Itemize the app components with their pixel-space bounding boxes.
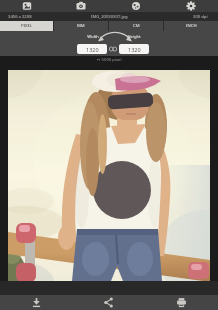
button[interactable]: CM (109, 21, 163, 31)
button[interactable]: MM (54, 21, 108, 31)
button[interactable]: INCH (164, 21, 218, 31)
button[interactable]: PIXEL (0, 21, 53, 31)
staticText: 300 dpi (193, 14, 208, 20)
staticText: ↔ 5000 pixel (97, 57, 122, 63)
button[interactable]: 1320 (77, 44, 107, 54)
button[interactable] (145, 295, 218, 310)
staticText: PIXEL (21, 23, 33, 29)
button[interactable] (54, 0, 108, 12)
staticText: Width (78, 34, 108, 40)
button[interactable] (72, 295, 145, 310)
staticText: Height (119, 34, 149, 40)
staticText: 3456 x 2208 (8, 14, 32, 20)
button[interactable] (163, 0, 218, 12)
staticText: INCH (186, 23, 197, 29)
button[interactable] (108, 0, 163, 12)
staticText: CM (133, 23, 140, 29)
button[interactable]: 1320 (119, 44, 149, 54)
button[interactable] (0, 0, 54, 12)
button[interactable] (0, 295, 72, 310)
staticText: MM (77, 23, 85, 29)
staticText: 1320 (128, 46, 141, 53)
staticText: IMG_20030307.jpg (91, 14, 128, 20)
staticText: 1320 (86, 46, 99, 53)
